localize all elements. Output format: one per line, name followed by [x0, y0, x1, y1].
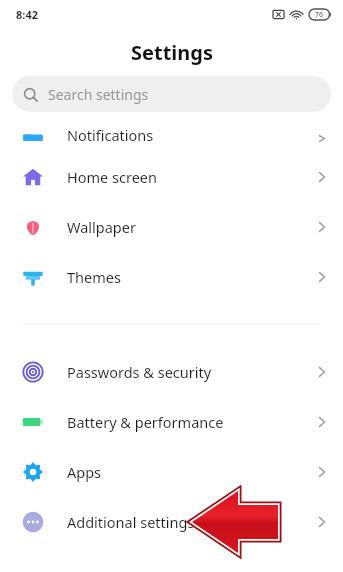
button[interactable]: Notifications	[0, 116, 343, 152]
button[interactable]: Passwords & security	[0, 347, 343, 397]
button[interactable]: Wallpaper	[0, 202, 343, 252]
staticText: Battery & performance	[67, 412, 224, 432]
staticText: 8:42	[16, 7, 38, 22]
button[interactable]: Home screen	[0, 152, 343, 202]
staticText: Themes	[67, 267, 121, 287]
staticText: Apps	[67, 462, 102, 482]
staticText: Wallpaper	[67, 217, 136, 237]
staticText: 76	[315, 10, 324, 20]
staticText: Home screen	[67, 167, 157, 187]
button[interactable]: Apps	[0, 447, 343, 497]
button[interactable]: Search settings	[12, 76, 331, 112]
staticText: Notifications	[67, 125, 154, 145]
staticText: Additional settings	[67, 512, 195, 532]
button[interactable]: Additional settings	[0, 497, 343, 547]
button[interactable]: Themes	[0, 252, 343, 302]
staticText: Settings	[131, 39, 213, 66]
button[interactable]: Battery & performance	[0, 397, 343, 447]
staticText: Search settings	[48, 85, 149, 104]
staticText: Passwords & security	[67, 362, 212, 382]
